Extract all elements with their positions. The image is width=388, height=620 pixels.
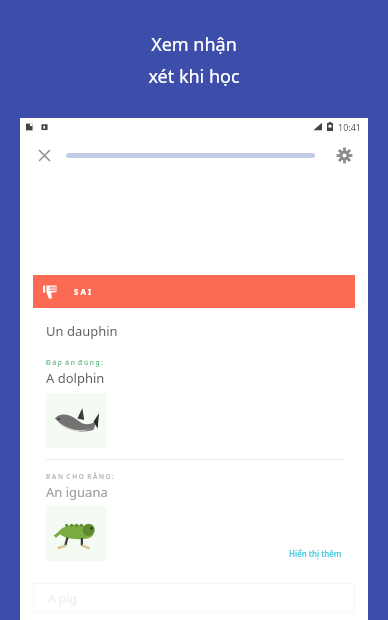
staticText: 10:41 [338,121,362,133]
staticText: A pig [48,590,77,606]
staticText: An iguana [46,483,108,501]
button[interactable]: Hiển thị thêm [287,546,344,561]
button[interactable]: Close [31,142,57,168]
staticText: B Ạ N C H O R Ằ N G : [46,472,114,481]
staticText: Hiển thị thêm [289,548,342,559]
staticText: xét khi học [148,64,240,89]
staticText: Xem nhận [151,32,237,57]
staticText: Đ á p á n đ ú n g : [46,358,103,367]
button[interactable]: Settings [331,142,357,168]
staticText: S A I [74,286,92,297]
button[interactable]: S A I [33,275,355,308]
staticText: Un dauphin [46,322,118,340]
staticText: A dolphin [46,369,105,387]
